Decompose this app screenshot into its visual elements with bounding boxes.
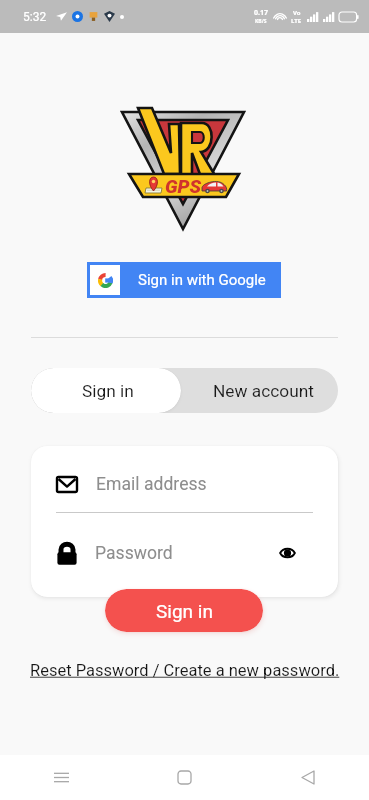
staticText: KB/S <box>255 18 267 25</box>
button[interactable]: Reset Password / Create a new password. <box>30 661 340 680</box>
button[interactable]: Sign in <box>105 589 263 632</box>
staticText: Email address <box>96 474 207 495</box>
staticText: Sign in <box>156 600 213 622</box>
button[interactable]: Back <box>246 755 369 800</box>
staticText: Sign in <box>82 381 134 401</box>
staticText: New account <box>213 381 314 401</box>
staticText: Vo <box>293 9 301 17</box>
button[interactable]: Sign in with Google <box>87 262 281 298</box>
staticText: LTE <box>291 17 302 25</box>
button[interactable]: Sign in <box>31 368 181 413</box>
staticText: Password <box>95 543 279 564</box>
staticText: 5:32 <box>23 10 47 24</box>
other: Show password <box>279 547 296 559</box>
button[interactable]: Password <box>53 539 296 567</box>
button[interactable]: Home <box>123 755 246 800</box>
button[interactable]: Email address <box>53 470 316 498</box>
staticText: 0.17 <box>254 8 268 18</box>
button[interactable]: New account <box>181 368 338 413</box>
staticText: GPS <box>165 175 202 197</box>
button[interactable]: Recent apps <box>0 755 123 800</box>
staticText: Sign in with Google <box>138 271 266 289</box>
